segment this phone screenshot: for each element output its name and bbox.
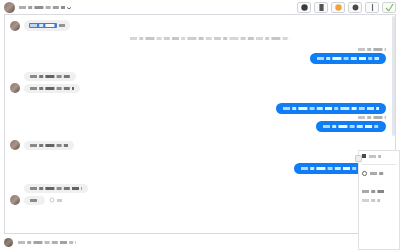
button[interactable]: Options: [355, 155, 362, 162]
button[interactable]: [24, 84, 80, 93]
button[interactable]: More options: [365, 2, 379, 13]
button[interactable]: [24, 141, 74, 150]
button[interactable]: [24, 184, 88, 193]
button[interactable]: [24, 72, 76, 81]
button[interactable]: [4, 2, 71, 13]
button[interactable]: [310, 53, 386, 64]
button[interactable]: [276, 103, 386, 114]
button[interactable]: Confirm: [382, 2, 396, 13]
button[interactable]: Messages: [314, 2, 328, 13]
button[interactable]: Notifications: [297, 2, 311, 13]
button[interactable]: [316, 121, 386, 132]
button[interactable]: Account: [348, 2, 362, 13]
button[interactable]: [294, 163, 386, 174]
button[interactable]: [24, 196, 45, 205]
button[interactable]: [24, 20, 70, 31]
button[interactable]: [4, 234, 396, 250]
button[interactable]: [358, 150, 400, 250]
button[interactable]: Friend requests: [331, 2, 345, 13]
